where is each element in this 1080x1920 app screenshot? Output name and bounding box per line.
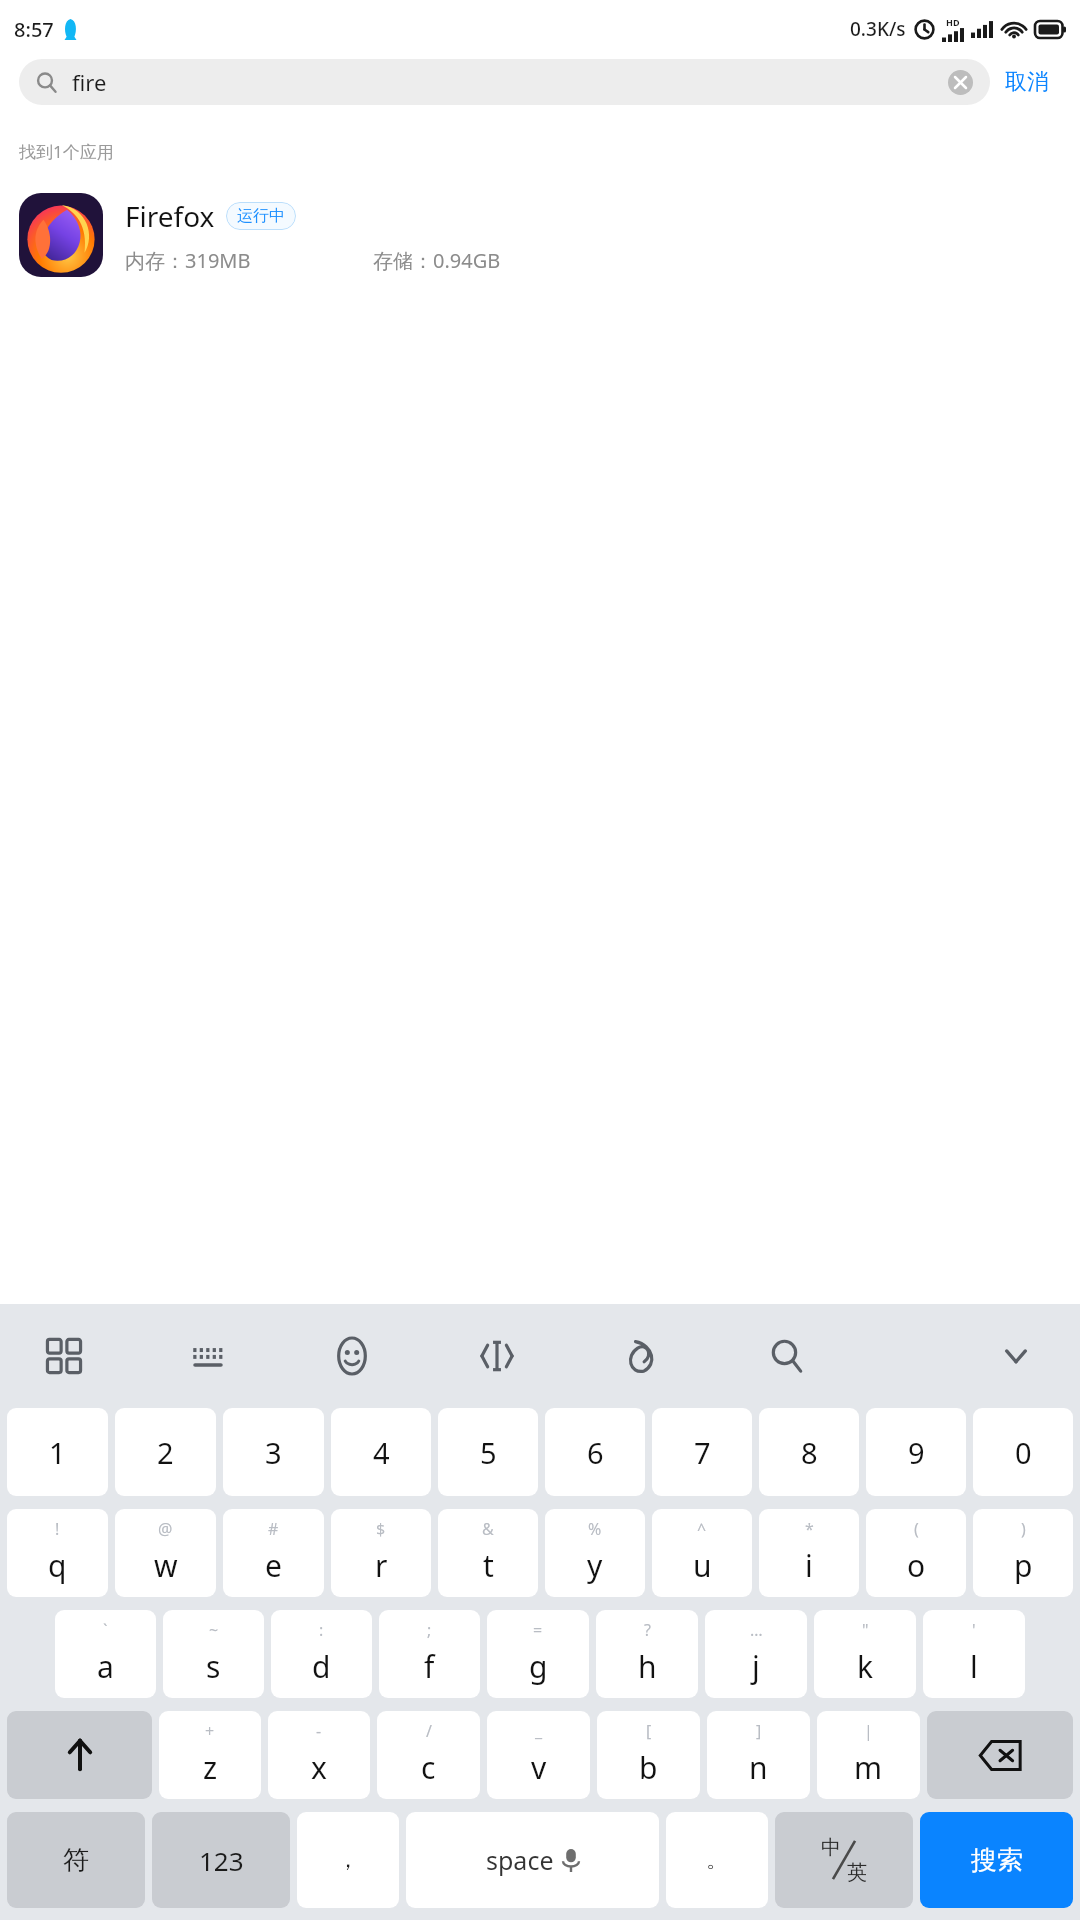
- button[interactable]: -: [268, 1711, 370, 1799]
- staticText: 内存：319MB: [125, 247, 251, 274]
- staticText: t: [483, 1545, 494, 1586]
- staticText: 2: [157, 1433, 174, 1472]
- staticText: +: [205, 1720, 215, 1742]
- button[interactable]: …: [705, 1610, 807, 1698]
- staticText: 9: [908, 1433, 925, 1472]
- button[interactable]: Emoji: [322, 1326, 382, 1386]
- staticText: w: [154, 1545, 178, 1586]
- staticText: |: [864, 1720, 873, 1742]
- button[interactable]: ，: [297, 1812, 399, 1908]
- staticText: 取消: [1005, 68, 1049, 96]
- button[interactable]: #: [223, 1509, 324, 1597]
- button[interactable]: ^: [652, 1509, 752, 1597]
- staticText: ，: [337, 1846, 359, 1874]
- button[interactable]: Panels: [34, 1326, 94, 1386]
- button[interactable]: Move cursor: [467, 1326, 527, 1386]
- staticText: 4: [373, 1433, 390, 1472]
- staticText: v: [531, 1747, 547, 1788]
- button[interactable]: 符: [7, 1812, 145, 1908]
- button[interactable]: space: [406, 1812, 659, 1908]
- button[interactable]: [: [597, 1711, 700, 1799]
- button[interactable]: 。: [666, 1812, 768, 1908]
- staticText: 搜索: [971, 1844, 1023, 1877]
- staticText: 符: [63, 1844, 89, 1877]
- button[interactable]: 123: [152, 1812, 290, 1908]
- staticText: p: [1014, 1545, 1033, 1586]
- button[interactable]: _: [487, 1711, 590, 1799]
- staticText: 3: [265, 1433, 282, 1472]
- button[interactable]: !: [7, 1509, 108, 1597]
- staticText: y: [587, 1545, 603, 1586]
- button[interactable]: ?: [596, 1610, 698, 1698]
- button[interactable]: ': [923, 1610, 1025, 1698]
- button[interactable]: $: [331, 1509, 431, 1597]
- button[interactable]: 运行中: [226, 202, 296, 230]
- staticText: d: [312, 1646, 331, 1687]
- button[interactable]: Backspace: [927, 1711, 1073, 1799]
- staticText: ;: [427, 1619, 432, 1641]
- button[interactable]: `: [55, 1610, 156, 1698]
- button[interactable]: ~: [163, 1610, 264, 1698]
- button[interactable]: ): [973, 1509, 1073, 1597]
- button[interactable]: Clipboard: [612, 1326, 672, 1386]
- staticText: 找到1个应用: [19, 140, 114, 163]
- staticText: q: [48, 1545, 67, 1586]
- staticText: …: [750, 1619, 763, 1641]
- button[interactable]: 0: [973, 1408, 1073, 1496]
- button[interactable]: Keyboard layout: [178, 1326, 238, 1386]
- staticText: !: [55, 1518, 60, 1540]
- button[interactable]: 9: [866, 1408, 966, 1496]
- button[interactable]: =: [487, 1610, 589, 1698]
- staticText: a: [97, 1646, 114, 1687]
- button[interactable]: &: [438, 1509, 538, 1597]
- button[interactable]: Clear text: [948, 70, 973, 95]
- button[interactable]: 搜索: [920, 1812, 1073, 1908]
- button[interactable]: 3: [223, 1408, 324, 1496]
- staticText: c: [421, 1747, 436, 1788]
- staticText: 1: [49, 1433, 66, 1472]
- button[interactable]: ": [814, 1610, 916, 1698]
- staticText: u: [693, 1545, 712, 1586]
- staticText: 8:57: [14, 16, 54, 43]
- button[interactable]: :: [271, 1610, 372, 1698]
- button[interactable]: 2: [115, 1408, 216, 1496]
- staticText: k: [857, 1646, 874, 1687]
- staticText: o: [907, 1545, 926, 1586]
- button[interactable]: 取消: [990, 58, 1064, 106]
- button[interactable]: 4: [331, 1408, 431, 1496]
- button[interactable]: Chinese English toggle: [775, 1812, 913, 1908]
- button[interactable]: 8: [759, 1408, 859, 1496]
- staticText: *: [805, 1518, 814, 1540]
- button[interactable]: 7: [652, 1408, 752, 1496]
- staticText: %: [588, 1518, 602, 1540]
- button[interactable]: 5: [438, 1408, 538, 1496]
- button[interactable]: Shift: [7, 1711, 152, 1799]
- button[interactable]: %: [545, 1509, 645, 1597]
- staticText: 英: [801, 1860, 913, 1885]
- staticText: i: [805, 1545, 813, 1586]
- staticText: 存储：0.94GB: [373, 247, 501, 274]
- staticText: ]: [756, 1720, 762, 1742]
- staticText: x: [311, 1747, 327, 1788]
- button[interactable]: @: [115, 1509, 216, 1597]
- staticText: Firefox: [125, 197, 215, 235]
- staticText: $: [376, 1518, 386, 1540]
- button[interactable]: 1: [7, 1408, 108, 1496]
- button[interactable]: +: [159, 1711, 261, 1799]
- button[interactable]: ]: [707, 1711, 810, 1799]
- button[interactable]: 6: [545, 1408, 645, 1496]
- staticText: r: [375, 1545, 388, 1586]
- button[interactable]: Search: [757, 1326, 817, 1386]
- button[interactable]: *: [759, 1509, 859, 1597]
- button[interactable]: ;: [379, 1610, 480, 1698]
- button[interactable]: (: [866, 1509, 966, 1597]
- button[interactable]: Firefox: [0, 193, 1080, 277]
- staticText: _: [535, 1720, 543, 1742]
- button[interactable]: /: [377, 1711, 480, 1799]
- button[interactable]: |: [817, 1711, 920, 1799]
- staticText: 0.3K/s: [850, 16, 906, 42]
- button[interactable]: fire: [19, 59, 990, 105]
- button[interactable]: Hide keyboard: [986, 1326, 1046, 1386]
- staticText: 8: [801, 1433, 818, 1472]
- staticText: space: [486, 1843, 554, 1877]
